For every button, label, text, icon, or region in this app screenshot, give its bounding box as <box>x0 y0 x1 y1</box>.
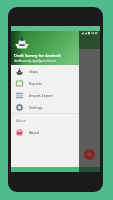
staticText: Ships <box>29 69 38 74</box>
button[interactable]: Settings <box>11 101 79 113</box>
staticText: Reports <box>29 81 43 86</box>
button[interactable]: About <box>11 126 79 138</box>
staticText: Import-Export <box>29 93 53 98</box>
button[interactable]: Reports <box>11 77 79 89</box>
staticText: About <box>16 118 26 123</box>
button[interactable]: Add record <box>84 149 95 160</box>
button[interactable]: Ships <box>11 65 79 77</box>
staticText: Settings <box>29 105 43 110</box>
staticText: draftsurvey.app@gmail.com <box>14 59 57 63</box>
staticText: About <box>29 130 40 135</box>
button[interactable]: Import-Export <box>11 89 79 101</box>
staticText: Draft Survey for Android <box>14 53 61 58</box>
